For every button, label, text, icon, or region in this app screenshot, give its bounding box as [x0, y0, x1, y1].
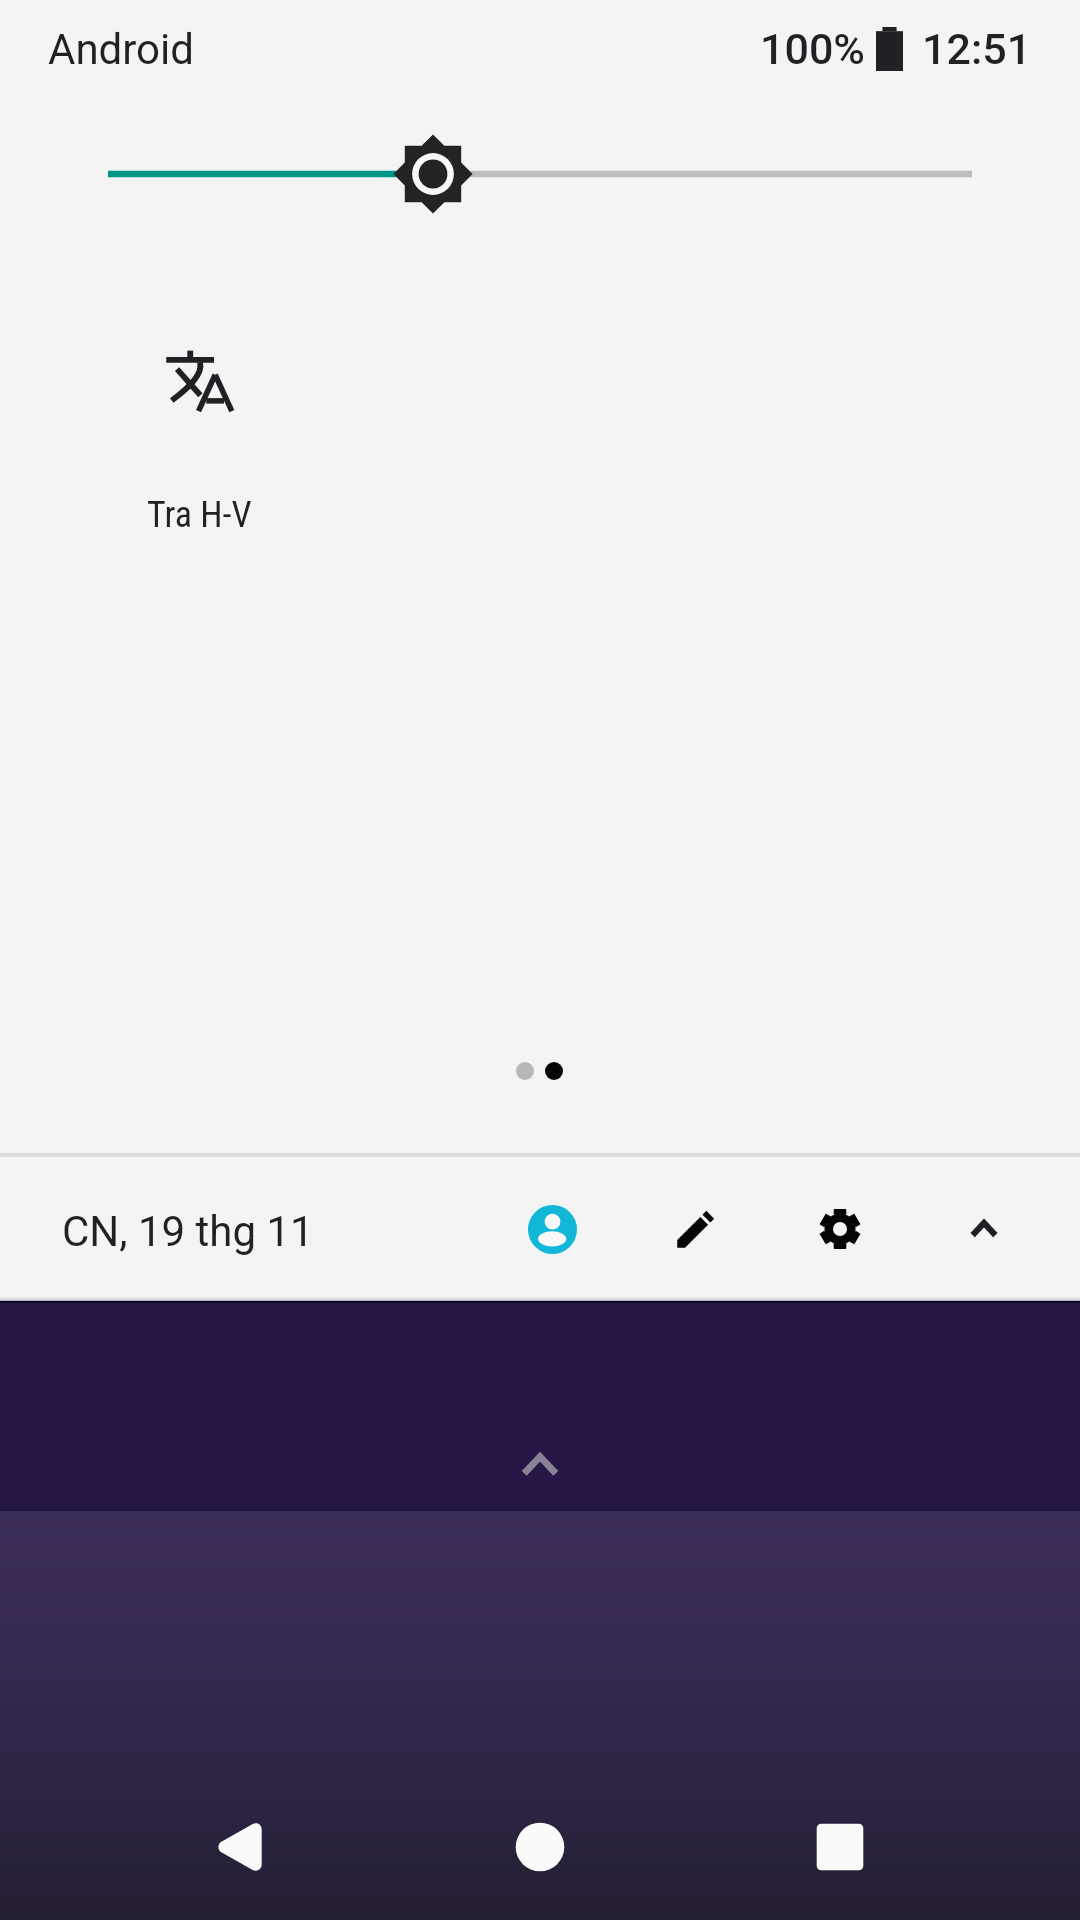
- button[interactable]: Tra H-V: [118, 300, 333, 555]
- staticText: Android: [48, 25, 194, 74]
- staticText: 12:51: [922, 24, 1032, 74]
- button[interactable]: Brightness: [0, 124, 1080, 224]
- staticText: Tra H-V: [147, 494, 252, 536]
- button[interactable]: Settings: [798, 1187, 882, 1271]
- button[interactable]: Home: [465, 1772, 615, 1920]
- staticText: 100%: [760, 24, 865, 74]
- button[interactable]: Account: [510, 1187, 594, 1271]
- button[interactable]: Recents: [765, 1772, 915, 1920]
- button[interactable]: Expand quick settings: [480, 1405, 600, 1525]
- staticText: CN, 19 thg 11: [62, 1207, 314, 1256]
- button[interactable]: Back: [165, 1772, 315, 1920]
- button[interactable]: Collapse: [942, 1187, 1026, 1271]
- button[interactable]: Edit tiles: [654, 1187, 738, 1271]
